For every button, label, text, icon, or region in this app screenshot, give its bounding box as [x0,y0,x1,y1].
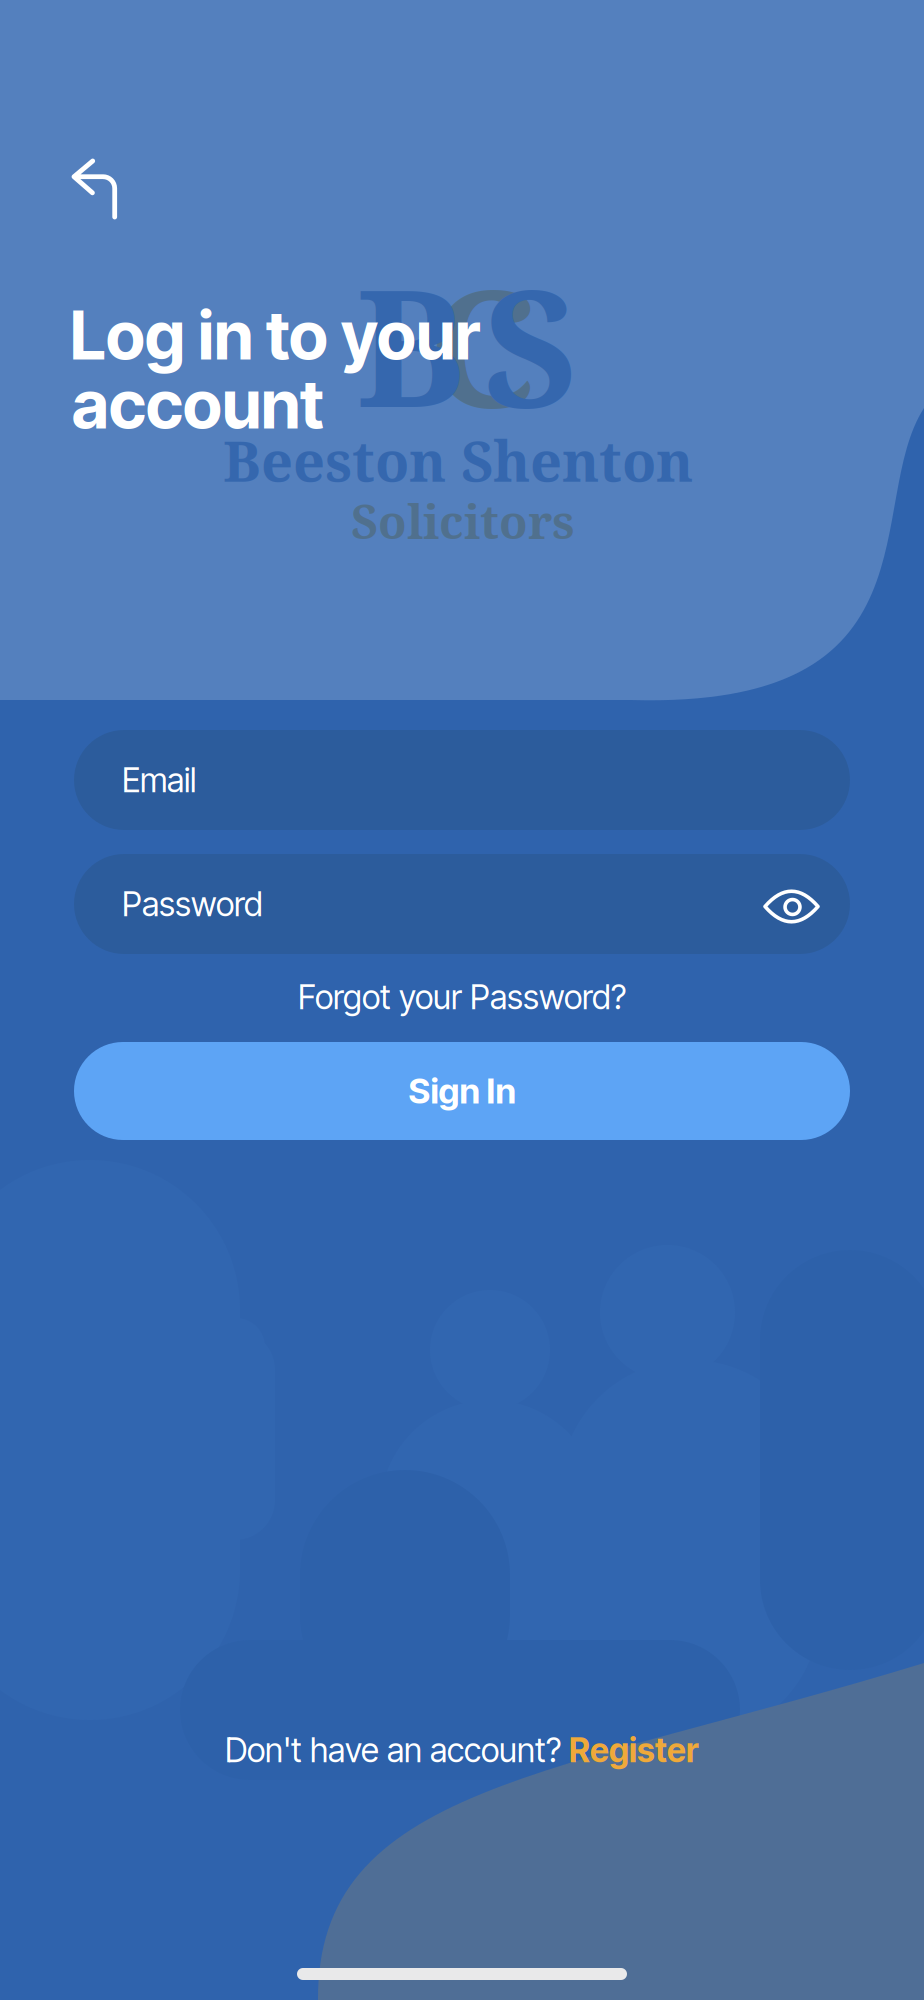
button[interactable]: Password [74,854,850,954]
staticText: B [356,233,465,455]
staticText: Beeston Shenton [223,422,693,498]
staticText: Register [569,1730,699,1770]
staticText: C [428,233,537,455]
button[interactable]: Sign In [74,1042,850,1140]
button[interactable]: Register [569,1730,699,1770]
staticText: Sign In [408,1070,515,1112]
button[interactable]: Forgot your Password? [74,971,850,1023]
staticText: Password [122,884,263,924]
staticText: Forgot your Password? [298,977,626,1017]
staticText: Don't have an account? [225,1730,569,1770]
staticText: S [483,233,577,455]
button[interactable]: Show password [743,859,840,954]
button[interactable]: Email [74,730,850,830]
button[interactable]: Back [42,133,154,245]
staticText: account [72,364,324,445]
staticText: Solicitors [351,489,574,553]
staticText: Email [122,760,196,800]
staticText: Log in to your [70,295,480,376]
